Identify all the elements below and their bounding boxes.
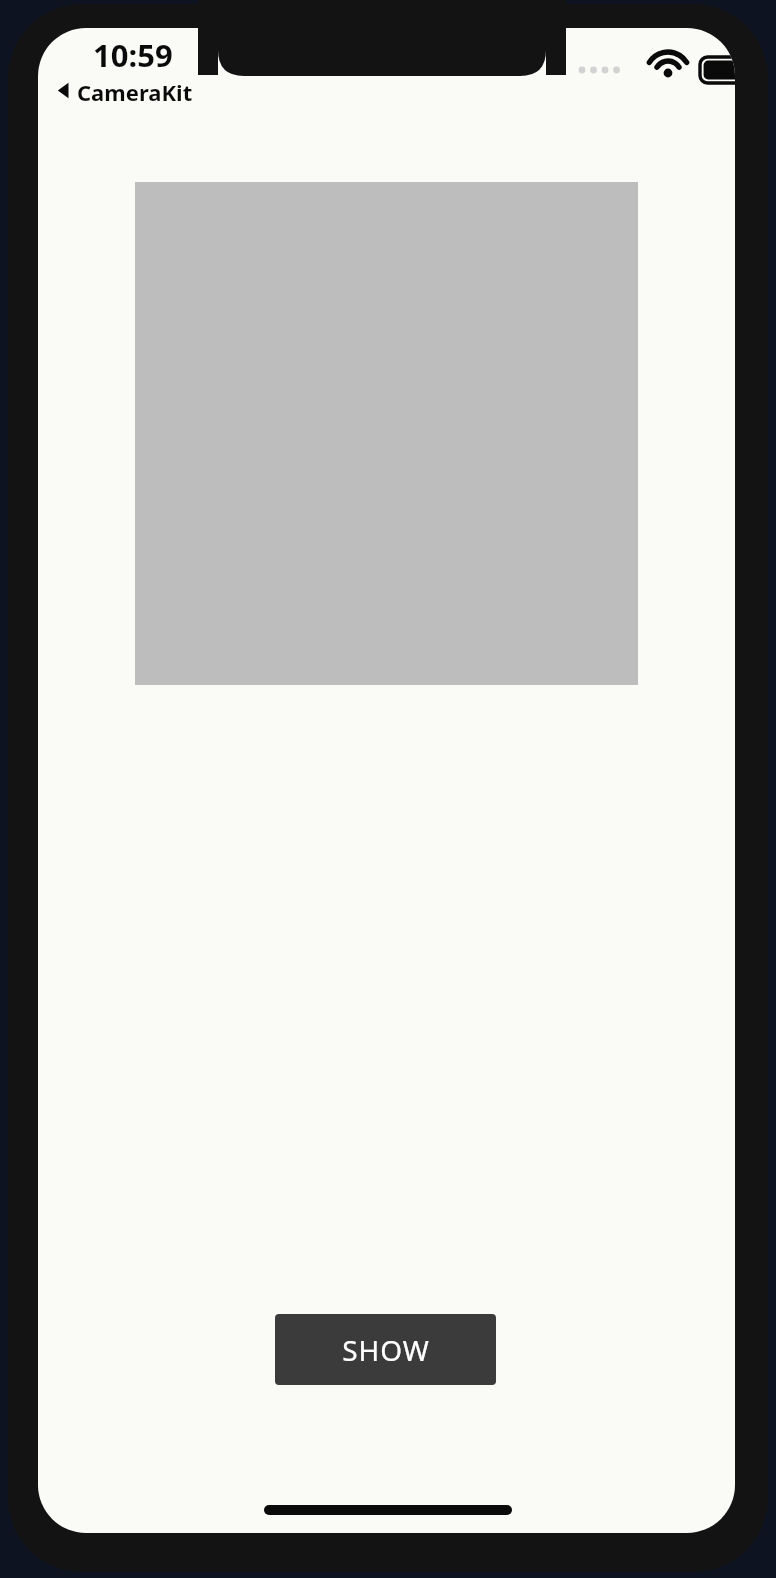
button[interactable]: CameraKit xyxy=(49,72,195,109)
button[interactable]: SHOW xyxy=(275,1314,496,1385)
staticText: SHOW xyxy=(342,1331,430,1369)
staticText: 10:59 xyxy=(93,34,173,76)
staticText: CameraKit xyxy=(77,77,193,104)
